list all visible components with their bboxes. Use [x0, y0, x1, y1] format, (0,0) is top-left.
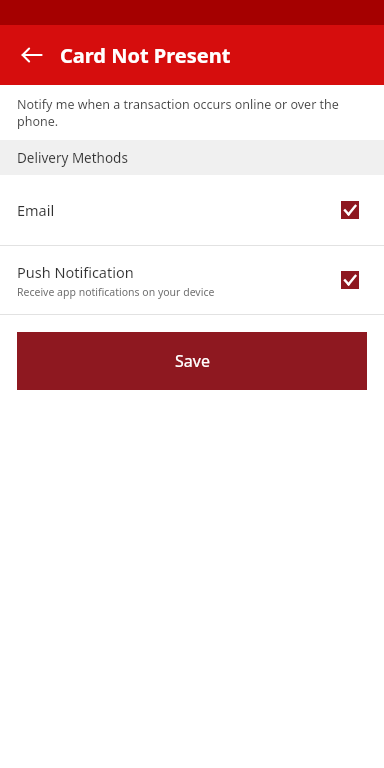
staticText: Email [17, 200, 341, 220]
staticText: Save [175, 350, 210, 372]
button[interactable]: Back [20, 43, 44, 67]
staticText: Delivery Methods [17, 149, 128, 167]
staticText: Push Notification [17, 262, 134, 282]
button[interactable]: Push Notification [0, 246, 384, 314]
button[interactable]: Email [0, 175, 384, 245]
staticText: Card Not Present [60, 42, 231, 69]
staticText: Notify me when a transaction occurs onli… [17, 96, 372, 130]
staticText: Receive app notifications on your device [17, 285, 215, 299]
button[interactable]: Save [17, 332, 367, 390]
